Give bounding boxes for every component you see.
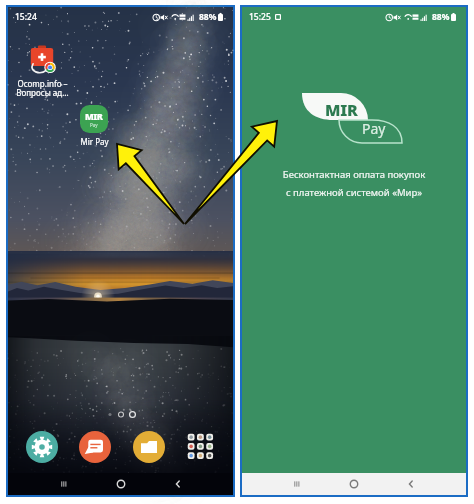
button[interactable]: Files bbox=[133, 431, 165, 463]
staticText: MIR bbox=[85, 110, 103, 122]
staticText: 15:25 bbox=[249, 11, 271, 23]
button[interactable]: Recents bbox=[269, 473, 325, 495]
button[interactable]: Settings bbox=[26, 431, 58, 463]
button[interactable]: Home bbox=[92, 473, 149, 495]
staticText: Mir Pay bbox=[80, 136, 109, 147]
button[interactable]: Home bbox=[325, 473, 382, 495]
staticText: MIR bbox=[325, 99, 358, 121]
button[interactable]: Ocomp.info – Вопросы ад... bbox=[9, 43, 75, 99]
staticText: Pay bbox=[90, 122, 98, 128]
staticText: Pay bbox=[362, 119, 386, 138]
button[interactable]: Back bbox=[149, 473, 206, 495]
button[interactable]: Messages bbox=[79, 431, 111, 463]
staticText: 15:24 bbox=[15, 11, 37, 23]
button[interactable]: Recents bbox=[35, 473, 92, 495]
staticText: 88% bbox=[432, 11, 450, 23]
button[interactable]: MIR bbox=[61, 105, 127, 147]
staticText: Ocomp.info – Вопросы ад... bbox=[16, 78, 69, 99]
staticText: 88% bbox=[199, 11, 217, 23]
button[interactable]: All apps bbox=[187, 433, 215, 461]
button[interactable]: Back bbox=[382, 473, 439, 495]
staticText: Бесконтактная оплата покупок с платежной… bbox=[242, 168, 466, 199]
